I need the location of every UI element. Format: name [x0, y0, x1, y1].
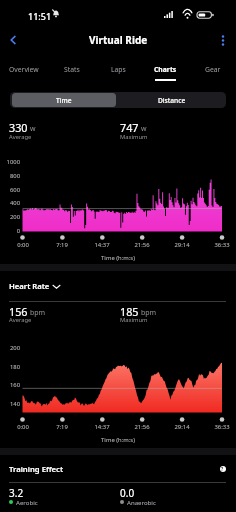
staticText: 36:33 [213, 423, 231, 431]
staticText: Heart Rate [9, 281, 50, 291]
staticText: 1000 [0, 158, 20, 166]
staticText: Stats [64, 65, 80, 74]
staticText: 36:33 [213, 241, 231, 249]
staticText: Maximum [120, 316, 148, 324]
staticText: 14:37 [93, 423, 111, 431]
staticText: 29:14 [173, 241, 191, 249]
button[interactable]: Gear [189, 58, 236, 80]
staticText: 21:56 [133, 241, 151, 249]
button[interactable]: Distance [120, 92, 224, 108]
staticText: 160 [0, 381, 20, 389]
staticText: w [30, 124, 36, 134]
staticText: Average [9, 316, 32, 324]
staticText: ? [221, 466, 224, 472]
staticText: Charts [154, 65, 177, 74]
staticText: 3.2 [9, 486, 24, 500]
staticText: 0 [0, 227, 20, 235]
staticText: Gear [205, 65, 221, 74]
staticText: 156 [9, 304, 28, 319]
staticText: 200 [0, 344, 20, 352]
staticText: Time [56, 96, 72, 105]
staticText: bpm [30, 308, 46, 318]
staticText: Overview [9, 65, 39, 74]
staticText: 14:37 [93, 241, 111, 249]
button[interactable]: More options [210, 28, 236, 52]
staticText: 330 [9, 120, 28, 135]
staticText: 140 [0, 400, 20, 408]
staticText: Aerobic [16, 498, 38, 506]
staticText: 7:19 [53, 241, 71, 249]
staticText: 600 [0, 186, 20, 194]
staticText: 800 [0, 172, 20, 180]
staticText: Maximum [120, 133, 148, 141]
staticText: Anaerobic [127, 498, 156, 506]
button[interactable]: Charts [142, 58, 189, 80]
staticText: 21:56 [133, 423, 151, 431]
staticText: Laps [111, 65, 126, 74]
button[interactable]: Overview [0, 58, 48, 80]
staticText: 400 [0, 199, 20, 207]
staticText: Virtual Ride [89, 33, 148, 47]
staticText: 180 [0, 363, 20, 371]
button[interactable]: Time [12, 93, 116, 107]
staticText: Training Effect [9, 464, 64, 474]
staticText: 200 [0, 213, 20, 221]
staticText: 0:00 [14, 423, 32, 431]
staticText: Time (h:m:s) [0, 254, 236, 262]
staticText: 0.0 [120, 486, 135, 500]
button[interactable]: Laps [95, 58, 142, 80]
button[interactable]: Training Effect info [216, 462, 229, 475]
staticText: 11:51 [28, 10, 52, 22]
staticText: 7:19 [53, 423, 71, 431]
staticText: w [141, 124, 147, 134]
button[interactable]: Stats [48, 58, 95, 80]
staticText: Distance [158, 96, 186, 105]
staticText: Time (h:m:s) [0, 436, 236, 444]
staticText: 29:14 [173, 423, 191, 431]
staticText: 185 [120, 304, 139, 319]
staticText: Average [9, 133, 32, 141]
button[interactable]: Back [0, 28, 26, 52]
staticText: 0:00 [14, 241, 32, 249]
staticText: 747 [120, 120, 139, 135]
staticText: bpm [141, 308, 157, 318]
